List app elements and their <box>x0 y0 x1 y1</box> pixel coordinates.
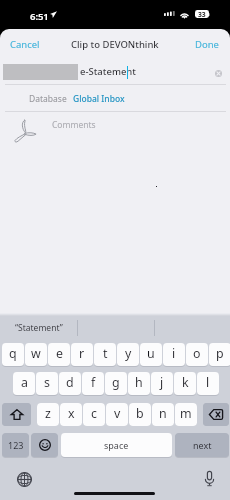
staticText: t <box>103 345 108 362</box>
staticText: i <box>172 345 176 362</box>
staticText: Database <box>29 93 67 105</box>
staticText: Global Inbox <box>73 93 125 105</box>
staticText: next <box>193 439 212 451</box>
button[interactable]: Cancel <box>4 35 46 54</box>
button[interactable]: Change keyboard <box>16 471 32 487</box>
button[interactable]: j <box>151 372 173 395</box>
button[interactable]: Done <box>189 35 225 54</box>
staticText: j <box>160 374 164 391</box>
staticText: space <box>104 439 129 451</box>
button[interactable]: k <box>174 372 196 395</box>
button[interactable]: 123 <box>2 433 29 457</box>
button[interactable]: w <box>25 343 47 366</box>
staticText: y <box>125 345 132 362</box>
staticText: w <box>31 345 41 362</box>
staticText: Clip to DEVONthink <box>71 38 159 51</box>
staticText: Cancel <box>10 38 40 51</box>
staticText: d <box>66 374 74 391</box>
button[interactable]: Backspace <box>203 403 229 426</box>
staticText: Done <box>195 38 219 51</box>
button[interactable]: Shift <box>2 403 31 426</box>
button[interactable]: y <box>117 343 139 366</box>
staticText: v <box>114 405 121 422</box>
staticText: p <box>216 345 224 362</box>
button[interactable]: a <box>13 372 35 395</box>
staticText: k <box>182 374 189 391</box>
button[interactable]: r <box>71 343 93 366</box>
button[interactable]: v <box>106 403 128 426</box>
button[interactable]: u <box>140 343 162 366</box>
staticText: e <box>56 345 63 362</box>
staticText: c <box>91 405 97 422</box>
staticText: o <box>193 345 201 362</box>
button[interactable]: Clear text <box>210 65 226 81</box>
button[interactable]: o <box>186 343 208 366</box>
button[interactable]: b <box>129 403 151 426</box>
staticText: e-Statement <box>80 65 136 78</box>
button[interactable]: q <box>2 343 24 366</box>
staticText: h <box>135 374 143 391</box>
button[interactable]: e <box>48 343 70 366</box>
button[interactable]: p <box>209 343 230 366</box>
button[interactable]: m <box>175 403 197 426</box>
staticText: f <box>91 374 96 391</box>
button[interactable] <box>77 314 154 342</box>
staticText: s <box>44 374 50 391</box>
button[interactable]: Database <box>0 86 230 111</box>
staticText: u <box>147 345 155 362</box>
staticText: q <box>9 345 17 362</box>
staticText: 6:51 <box>30 10 49 23</box>
staticText: l <box>206 374 210 391</box>
button[interactable] <box>154 314 230 342</box>
button[interactable]: n <box>152 403 174 426</box>
button[interactable]: x <box>60 403 82 426</box>
button[interactable]: d <box>59 372 81 395</box>
staticText: n <box>159 405 167 422</box>
button[interactable]: “Statement” <box>0 314 77 342</box>
staticText: x <box>68 405 75 422</box>
button[interactable]: space <box>61 433 172 457</box>
button[interactable]: z <box>37 403 59 426</box>
button[interactable]: t <box>94 343 116 366</box>
button[interactable]: Emoji <box>31 433 58 457</box>
staticText: 33 <box>198 10 206 18</box>
staticText: r <box>79 345 85 362</box>
button[interactable]: l <box>197 372 219 395</box>
staticText: Comments <box>52 119 96 131</box>
staticText: “Statement” <box>15 322 63 334</box>
button[interactable]: s <box>36 372 58 395</box>
button[interactable]: h <box>128 372 150 395</box>
button[interactable]: f <box>82 372 104 395</box>
staticText: z <box>45 405 51 422</box>
staticText: b <box>136 405 144 422</box>
button[interactable]: c <box>83 403 105 426</box>
button[interactable]: i <box>163 343 185 366</box>
button[interactable]: g <box>105 372 127 395</box>
staticText: m <box>180 405 192 422</box>
staticText: 123 <box>8 439 24 451</box>
staticText: a <box>21 374 28 391</box>
button[interactable]: Dictation <box>201 470 217 486</box>
staticText: g <box>112 374 120 391</box>
button[interactable]: next <box>175 433 229 457</box>
